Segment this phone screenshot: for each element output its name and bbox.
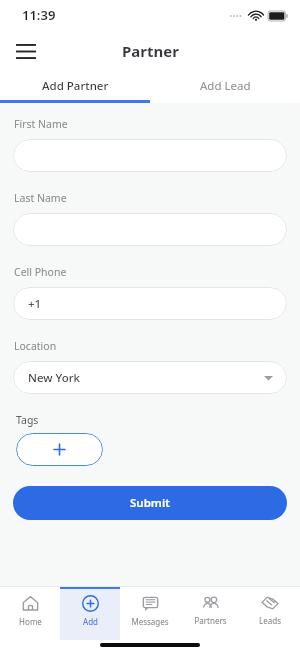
staticText: +1 xyxy=(28,296,42,312)
button[interactable]: Add tag xyxy=(16,433,103,466)
staticText: Cell Phone xyxy=(14,265,67,279)
button[interactable]: Home xyxy=(0,587,60,640)
staticText: Tags xyxy=(16,413,39,427)
button[interactable]: Leads xyxy=(240,587,300,640)
button[interactable]: Menu xyxy=(8,33,44,69)
button[interactable]: New York xyxy=(13,361,287,394)
button[interactable] xyxy=(13,213,287,246)
button[interactable]: Add Partner xyxy=(0,72,150,100)
staticText: Add Partner xyxy=(42,78,109,94)
staticText: Add xyxy=(83,616,98,627)
button[interactable]: Submit xyxy=(13,486,287,520)
staticText: 11:39 xyxy=(22,6,56,24)
staticText: Messages xyxy=(131,616,169,627)
staticText: Last Name xyxy=(14,191,67,205)
staticText: Submit xyxy=(130,495,170,511)
staticText: Location xyxy=(14,339,57,353)
button[interactable]: Messages xyxy=(120,587,180,640)
staticText: Leads xyxy=(259,615,281,626)
staticText: New York xyxy=(28,370,81,386)
button[interactable]: Partners xyxy=(180,587,240,640)
staticText: Add Lead xyxy=(200,78,251,94)
button[interactable]: +1 xyxy=(13,287,287,320)
button[interactable]: Add xyxy=(60,587,120,640)
staticText: Partners xyxy=(194,615,227,626)
staticText: Partner xyxy=(122,41,179,61)
staticText: First Name xyxy=(14,117,68,131)
button[interactable] xyxy=(13,139,287,172)
button[interactable]: Add Lead xyxy=(150,72,300,100)
staticText: Home xyxy=(19,616,42,627)
